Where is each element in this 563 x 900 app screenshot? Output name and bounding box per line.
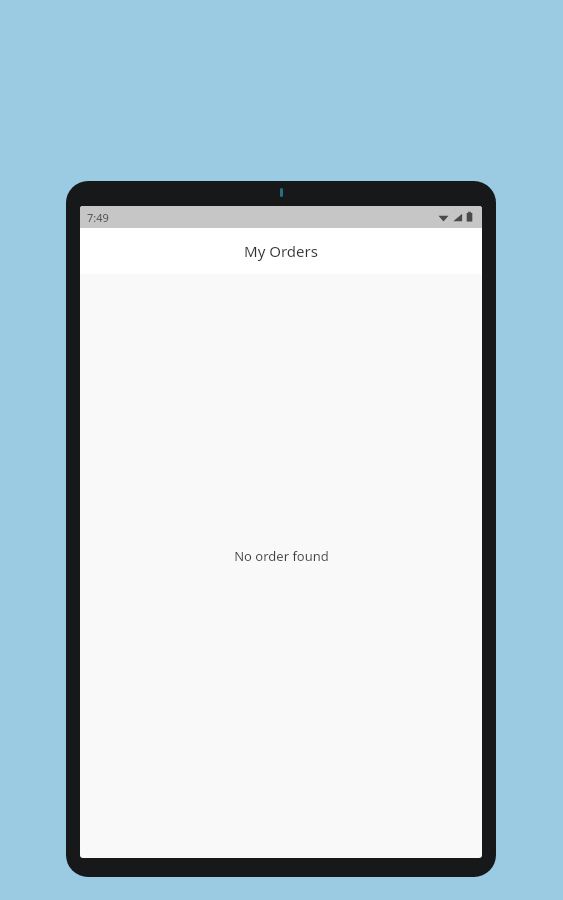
other: Signal [452, 212, 463, 223]
other: Battery [466, 211, 473, 223]
other: Wi-Fi [438, 212, 449, 223]
staticText: 7:49 [87, 210, 109, 225]
button[interactable]: My Orders [80, 228, 482, 274]
staticText: My Orders [244, 241, 318, 261]
staticText: No order found [234, 547, 329, 565]
